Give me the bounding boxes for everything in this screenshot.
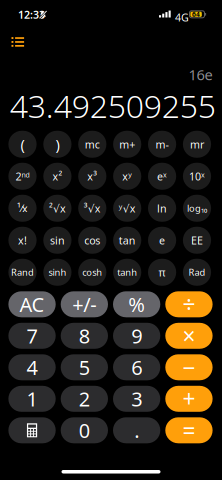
staticText: +	[182, 384, 195, 414]
staticText: 6	[131, 354, 142, 381]
button[interactable]: 3	[113, 386, 160, 412]
button[interactable]: ÷	[165, 291, 213, 317]
button[interactable]: tan	[113, 227, 141, 254]
staticText: 4G	[175, 10, 189, 25]
staticText: 12:33	[18, 7, 45, 22]
button[interactable]: m+	[113, 131, 141, 158]
staticText: 64	[192, 10, 200, 19]
staticText: 10ˣ	[189, 169, 205, 183]
button[interactable]: .	[113, 417, 160, 443]
button[interactable]: mc	[78, 131, 106, 158]
button[interactable]: 10ˣ	[183, 163, 211, 190]
button[interactable]: 2	[61, 386, 108, 412]
staticText: m-	[156, 137, 169, 151]
staticText: mr	[190, 137, 204, 151]
staticText: %	[128, 291, 145, 318]
staticText: 2ⁿᵈ	[15, 169, 29, 183]
button[interactable]: eˣ	[148, 163, 176, 190]
staticText: ÷	[182, 289, 195, 319]
staticText: Rand	[11, 266, 34, 278]
staticText: mc	[85, 137, 100, 151]
staticText: ²√x	[49, 201, 66, 215]
button[interactable]: xʸ	[113, 163, 141, 190]
button[interactable]: m-	[148, 131, 176, 158]
staticText: sin	[50, 233, 65, 247]
button[interactable]: (	[8, 131, 37, 158]
staticText: tan	[119, 233, 136, 247]
button[interactable]: +	[165, 386, 213, 412]
button[interactable]: x²	[43, 163, 71, 190]
staticText: x³	[87, 169, 97, 183]
button[interactable]: ×	[165, 323, 213, 349]
button[interactable]: cos	[78, 227, 106, 254]
staticText: 8	[79, 322, 90, 349]
staticText: =	[182, 415, 195, 445]
button[interactable]: sinh	[43, 259, 71, 286]
staticText: log₁₀	[187, 202, 207, 214]
button[interactable]: EE	[183, 227, 211, 254]
button[interactable]: sin	[43, 227, 71, 254]
staticText: ¹⁄x	[17, 201, 28, 215]
button[interactable]: 7	[8, 323, 56, 349]
button[interactable]: ³√x	[78, 195, 106, 222]
button[interactable]: +/-	[61, 291, 108, 317]
staticText: sinh	[48, 266, 66, 278]
staticText: EE	[191, 233, 203, 247]
button[interactable]: log₁₀	[183, 195, 211, 222]
staticText: 0	[79, 417, 90, 444]
staticText: (	[20, 134, 24, 154]
button[interactable]: 4	[8, 354, 56, 380]
button[interactable]: cosh	[78, 259, 106, 286]
staticText: 1	[26, 385, 37, 412]
staticText: ³√x	[84, 201, 101, 215]
button[interactable]: e	[148, 227, 176, 254]
staticText: eˣ	[157, 169, 167, 183]
button[interactable]: History	[5, 31, 30, 53]
staticText: 9	[131, 322, 142, 349]
button[interactable]: ʸ√x	[113, 195, 141, 222]
staticText: .	[134, 417, 139, 444]
button[interactable]: )	[43, 131, 71, 158]
button[interactable]: x³	[78, 163, 106, 190]
button[interactable]: %	[113, 291, 160, 317]
staticText: ʸ√x	[119, 201, 136, 215]
button[interactable]: 0	[61, 417, 108, 443]
staticText: +/-	[72, 291, 96, 318]
button[interactable]: 2ⁿᵈ	[8, 163, 37, 190]
button[interactable]: −	[165, 354, 213, 380]
staticText: AC	[19, 291, 44, 318]
button[interactable]: Calculator mode	[8, 417, 56, 443]
staticText: e	[159, 233, 165, 247]
button[interactable]: Rand	[8, 259, 37, 286]
button[interactable]: AC	[8, 291, 56, 317]
staticText: 43.492509255	[10, 84, 216, 127]
button[interactable]: π	[148, 259, 176, 286]
button[interactable]: 9	[113, 323, 160, 349]
staticText: ln	[157, 201, 167, 215]
staticText: m+	[119, 137, 135, 151]
staticText: )	[55, 134, 59, 154]
button[interactable]: mr	[183, 131, 211, 158]
button[interactable]: ²√x	[43, 195, 71, 222]
staticText: 4	[26, 354, 37, 381]
staticText: ×	[182, 321, 195, 351]
button[interactable]: Rad	[183, 259, 211, 286]
button[interactable]: ln	[148, 195, 176, 222]
staticText: x!	[18, 233, 27, 247]
button[interactable]: 8	[61, 323, 108, 349]
button[interactable]: 1	[8, 386, 56, 412]
button[interactable]: 6	[113, 354, 160, 380]
staticText: x²	[52, 169, 62, 183]
staticText: cos	[84, 233, 100, 247]
staticText: 3	[131, 385, 142, 412]
staticText: tanh	[117, 266, 137, 278]
button[interactable]: tanh	[113, 259, 141, 286]
button[interactable]: =	[165, 417, 213, 443]
staticText: −	[182, 352, 195, 382]
button[interactable]: x!	[8, 227, 37, 254]
staticText: cosh	[82, 266, 102, 278]
staticText: xʸ	[122, 169, 132, 183]
staticText: 5	[79, 354, 90, 381]
button[interactable]: 5	[61, 354, 108, 380]
button[interactable]: ¹⁄x	[8, 195, 37, 222]
